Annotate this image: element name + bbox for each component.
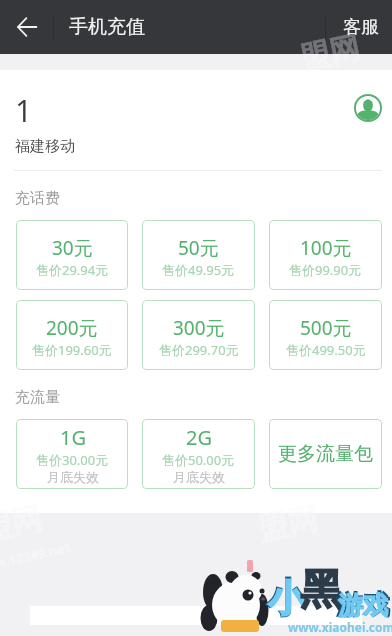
staticText: 售价30.00元 (36, 451, 109, 469)
staticText: 售价299.70元 (159, 341, 239, 359)
staticText: 更多流量包 (278, 442, 373, 466)
button[interactable]: 更多流量包 (269, 419, 382, 489)
staticText: 盟网 (255, 499, 321, 549)
staticText: 500元 (300, 315, 352, 341)
button[interactable]: Back (0, 0, 53, 54)
button[interactable]: 200元 (16, 300, 128, 370)
staticText: www.xiaohei.com (288, 619, 392, 635)
staticText: 盟网 (0, 499, 45, 549)
staticText: 黑 (300, 564, 342, 617)
staticText: 游戏 (336, 588, 390, 622)
staticText: 月底失效 (47, 469, 99, 485)
staticText: 售价199.60元 (32, 341, 112, 359)
button[interactable]: 300元 (142, 300, 255, 370)
staticText: 充流量 (15, 388, 60, 407)
staticText: 售价50.00元 (162, 451, 235, 469)
button[interactable]: 100元 (269, 220, 382, 290)
button[interactable]: 500元 (269, 300, 382, 370)
staticText: 手机充值 (69, 15, 145, 39)
staticText: 200元 (46, 315, 98, 341)
staticText: 游戏 (338, 590, 388, 621)
button[interactable] (30, 606, 362, 625)
button[interactable]: Contacts (354, 94, 382, 122)
button[interactable]: 50元 (142, 220, 255, 290)
staticText: 100元 (300, 235, 352, 261)
staticText: 客服 (343, 16, 379, 39)
staticText: 30元 (52, 235, 93, 261)
staticText: 1 (15, 90, 33, 131)
staticText: 1G (60, 424, 86, 451)
staticText: 售价29.94元 (36, 261, 109, 279)
staticText: 售价499.50元 (286, 341, 366, 359)
staticText: 福建移动 (15, 137, 75, 156)
staticText: 售价49.95元 (162, 261, 235, 279)
button[interactable]: 30元 (16, 220, 128, 290)
staticText: 300元 (173, 315, 225, 341)
staticText: 小 (266, 573, 306, 623)
button[interactable]: 2G (142, 419, 255, 489)
staticText: 充话费 (15, 189, 60, 208)
staticText: 2G (186, 424, 212, 451)
staticText: 小 (268, 575, 305, 622)
staticText: 月底失效 (173, 469, 225, 485)
staticText: 50元 (178, 235, 219, 261)
button[interactable]: 1G (16, 419, 128, 489)
staticText: 盟网 (297, 28, 363, 78)
button[interactable]: 客服 (326, 0, 392, 54)
staticText: 售价99.90元 (289, 261, 362, 279)
